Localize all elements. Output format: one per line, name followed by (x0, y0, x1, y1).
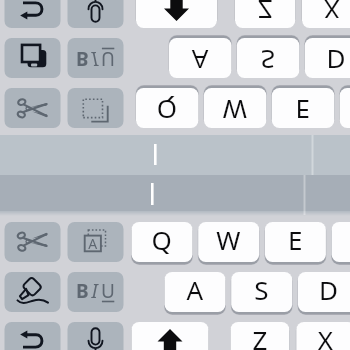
button[interactable]: Split dual keyboard (0, 0, 350, 350)
